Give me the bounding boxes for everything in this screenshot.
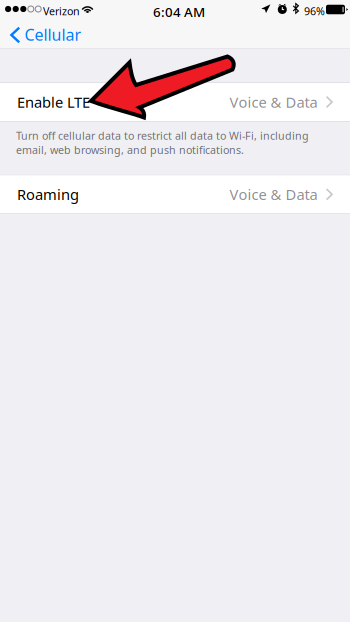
staticText: Enable LTE	[17, 92, 90, 112]
staticText: Verizon	[43, 4, 80, 18]
staticText: Voice & Data	[230, 92, 318, 112]
button[interactable]: Cellular	[0, 20, 90, 49]
staticText: Turn off cellular data to restrict all d…	[16, 128, 309, 157]
button[interactable]: Enable LTE	[0, 83, 350, 121]
button[interactable]: Roaming	[0, 175, 350, 213]
staticText: Voice & Data	[230, 185, 318, 204]
staticText: Roaming	[17, 185, 79, 204]
staticText: 6:04 AM	[153, 3, 205, 21]
staticText: Cellular	[25, 24, 82, 45]
staticText: 96%	[304, 4, 325, 18]
